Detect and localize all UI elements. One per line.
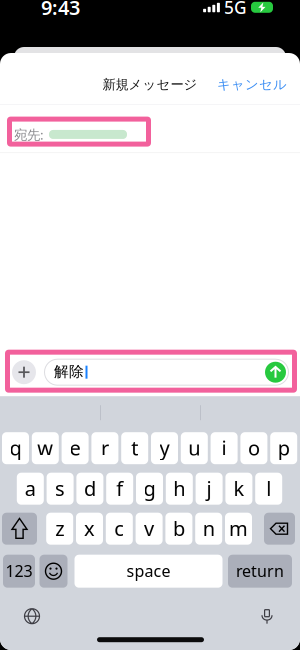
staticText: y bbox=[159, 434, 169, 461]
staticText: 新規メッセージ bbox=[102, 76, 197, 93]
staticText: r bbox=[101, 434, 109, 461]
staticText: p bbox=[278, 434, 290, 461]
button[interactable]: n bbox=[195, 513, 222, 545]
staticText: z bbox=[55, 515, 64, 541]
staticText: space bbox=[126, 560, 170, 581]
button[interactable]: Switch keyboard bbox=[21, 605, 43, 627]
button[interactable]: キャンセル bbox=[211, 72, 293, 97]
button[interactable]: Send bbox=[265, 362, 286, 383]
button[interactable]: return bbox=[228, 555, 292, 588]
staticText: w bbox=[37, 434, 53, 461]
button[interactable]: Delete bbox=[264, 513, 295, 545]
staticText: m bbox=[229, 515, 248, 541]
button[interactable]: e bbox=[62, 432, 89, 464]
staticText: c bbox=[114, 515, 124, 541]
button[interactable]: s bbox=[47, 473, 74, 505]
button[interactable]: y bbox=[151, 432, 178, 464]
button[interactable]: i bbox=[211, 432, 238, 464]
button[interactable]: 123 bbox=[3, 555, 35, 588]
button[interactable]: j bbox=[196, 473, 223, 505]
button[interactable]: l bbox=[255, 473, 282, 505]
button[interactable]: g bbox=[136, 473, 163, 505]
staticText: キャンセル bbox=[217, 76, 287, 93]
staticText: d bbox=[84, 475, 96, 501]
staticText: v bbox=[144, 515, 154, 541]
staticText: q bbox=[9, 434, 21, 461]
button[interactable]: x bbox=[76, 513, 103, 545]
staticText: e bbox=[70, 434, 81, 461]
staticText: f bbox=[116, 475, 123, 501]
button[interactable]: space bbox=[74, 555, 222, 588]
staticText: o bbox=[248, 434, 260, 461]
staticText: 123 bbox=[5, 560, 32, 581]
button[interactable]: w bbox=[32, 432, 59, 464]
button[interactable]: a bbox=[17, 473, 44, 505]
staticText: 9:43 bbox=[41, 0, 80, 21]
staticText: k bbox=[233, 475, 244, 501]
button[interactable]: b bbox=[165, 513, 192, 545]
button[interactable]: o bbox=[240, 432, 267, 464]
button[interactable]: z bbox=[46, 513, 73, 545]
button[interactable]: u bbox=[181, 432, 208, 464]
button[interactable]: d bbox=[76, 473, 103, 505]
button[interactable]: Dictation bbox=[256, 605, 278, 627]
button[interactable]: p bbox=[270, 432, 297, 464]
staticText: n bbox=[203, 515, 215, 541]
button[interactable]: f bbox=[106, 473, 133, 505]
staticText: 解除 bbox=[54, 363, 84, 381]
staticText: l bbox=[266, 475, 271, 501]
button[interactable]: r bbox=[91, 432, 118, 464]
staticText: g bbox=[143, 475, 155, 501]
staticText: return bbox=[236, 560, 284, 581]
staticText: i bbox=[222, 434, 227, 461]
staticText: 5G bbox=[224, 0, 247, 19]
staticText: j bbox=[207, 475, 212, 501]
button[interactable]: h bbox=[166, 473, 193, 505]
button[interactable]: q bbox=[2, 432, 29, 464]
staticText: h bbox=[173, 475, 185, 501]
staticText: b bbox=[173, 515, 185, 541]
button[interactable]: Emoji bbox=[39, 555, 67, 588]
staticText: 宛先: bbox=[14, 126, 44, 143]
staticText: u bbox=[188, 434, 200, 461]
button[interactable]: Shift bbox=[2, 513, 37, 545]
staticText: s bbox=[55, 475, 65, 501]
button[interactable]: v bbox=[136, 513, 163, 545]
button[interactable]: k bbox=[225, 473, 252, 505]
staticText: a bbox=[25, 475, 36, 501]
staticText: t bbox=[131, 434, 138, 461]
button[interactable]: t bbox=[121, 432, 148, 464]
button[interactable]: c bbox=[106, 513, 133, 545]
button[interactable]: m bbox=[225, 513, 252, 545]
button[interactable]: Add attachment bbox=[12, 360, 36, 384]
staticText: x bbox=[84, 515, 95, 541]
